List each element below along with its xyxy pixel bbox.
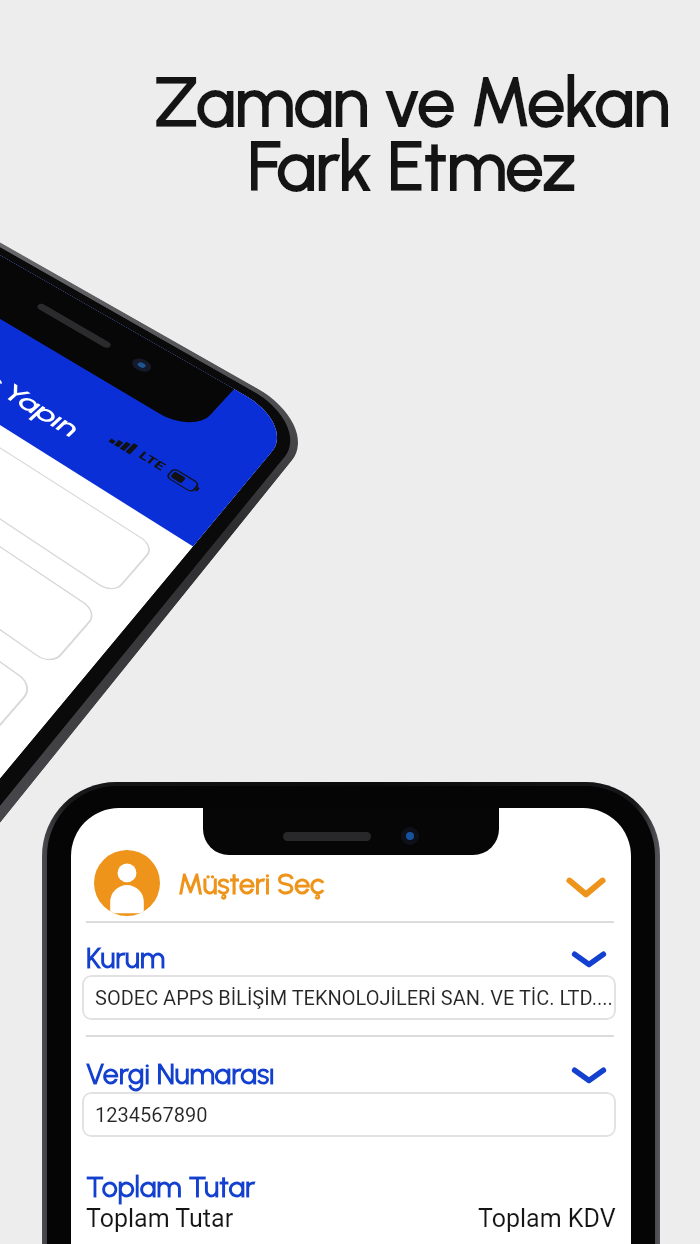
staticText: Zaman ve Mekan Fark Etmez <box>62 62 700 207</box>
button[interactable]: Kurum <box>71 941 631 975</box>
button[interactable]: Vergi Numarası <box>71 1057 631 1091</box>
staticText: Kurum <box>86 941 166 975</box>
button[interactable]: 1234567890 <box>82 1092 616 1137</box>
button[interactable]: Müşteri Seç <box>71 842 631 922</box>
staticText: 1234567890 <box>95 1103 208 1126</box>
other: Expand <box>569 942 609 976</box>
staticText: Vergi Numarası <box>86 1057 275 1091</box>
staticText: LTE <box>136 449 168 473</box>
staticText: Giriş Yapın <box>0 344 87 442</box>
staticText: Müşteri Seç <box>178 867 325 901</box>
staticText: Toplam Tutar <box>86 1170 256 1204</box>
other: Expand <box>563 864 609 910</box>
other: Expand <box>569 1058 609 1092</box>
button[interactable]: SODEC APPS BİLİŞİM TEKNOLOJİLERİ SAN. VE… <box>82 975 616 1020</box>
staticText: Toplam Tutar <box>86 1204 234 1233</box>
staticText: SODEC APPS BİLİŞİM TEKNOLOJİLERİ SAN. VE… <box>95 986 613 1009</box>
staticText: Toplam KDV <box>478 1204 616 1233</box>
